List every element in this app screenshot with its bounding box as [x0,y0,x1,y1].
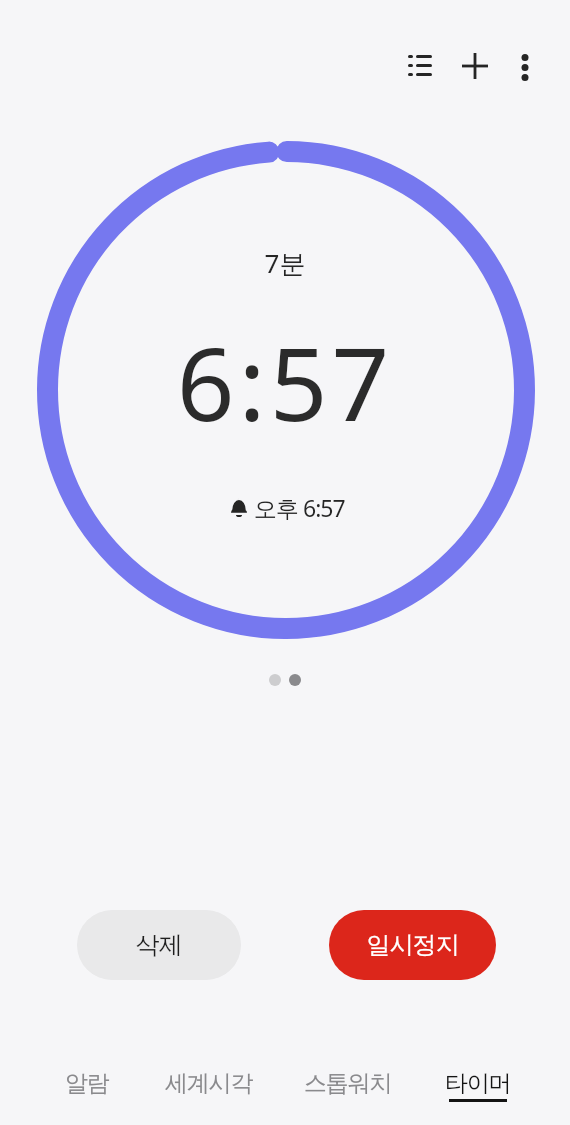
button[interactable] [451,42,499,90]
button[interactable]: 스톱워치 [288,1051,408,1115]
staticText: 오후 6:57 [254,492,345,523]
button[interactable]: 타이머 [418,1051,538,1115]
button[interactable] [395,41,444,90]
staticText: 7분 [0,245,570,281]
button[interactable]: 삭제 [77,910,241,980]
button[interactable]: 알람 [27,1051,147,1115]
button[interactable] [503,45,547,89]
staticText: 타이머 [445,1069,511,1098]
staticText: 삭제 [136,930,182,960]
staticText: 알람 [65,1069,109,1098]
staticText: 6:57 [0,313,570,451]
staticText: 세계시각 [165,1069,253,1098]
button[interactable]: 세계시각 [149,1051,269,1115]
button[interactable]: 일시정지 [329,910,496,980]
staticText: 스톱워치 [304,1069,392,1098]
staticText: 일시정지 [367,930,459,960]
